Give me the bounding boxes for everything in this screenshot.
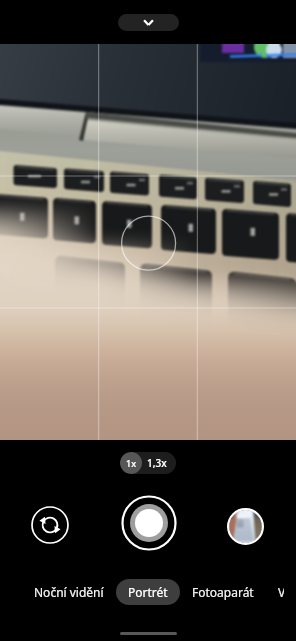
button[interactable]: Switch camera: [26, 501, 74, 549]
button[interactable]: 1,3x: [147, 452, 167, 474]
staticText: 1,3x: [147, 456, 167, 470]
button[interactable]: Take photo: [118, 492, 180, 554]
button[interactable]: Open gallery: [222, 503, 268, 549]
button[interactable]: Vid: [266, 579, 296, 605]
staticText: Fotoaparát: [192, 584, 254, 600]
staticText: Vid: [278, 584, 284, 600]
button[interactable]: More camera options: [118, 14, 179, 31]
button[interactable]: 1x: [120, 452, 142, 474]
button[interactable]: Noční vidění: [22, 579, 116, 605]
button[interactable]: Portrét: [116, 579, 180, 605]
staticText: Portrét: [128, 584, 168, 600]
staticText: Noční vidění: [34, 584, 104, 600]
staticText: 1x: [126, 457, 137, 469]
button[interactable]: Fotoaparát: [180, 579, 266, 605]
